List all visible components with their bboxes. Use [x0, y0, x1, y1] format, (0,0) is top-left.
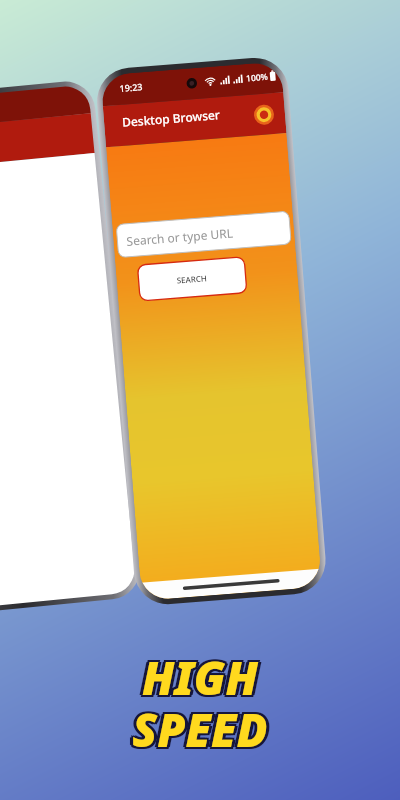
button[interactable]: Desktop Browser promo screen [0, 0, 400, 800]
